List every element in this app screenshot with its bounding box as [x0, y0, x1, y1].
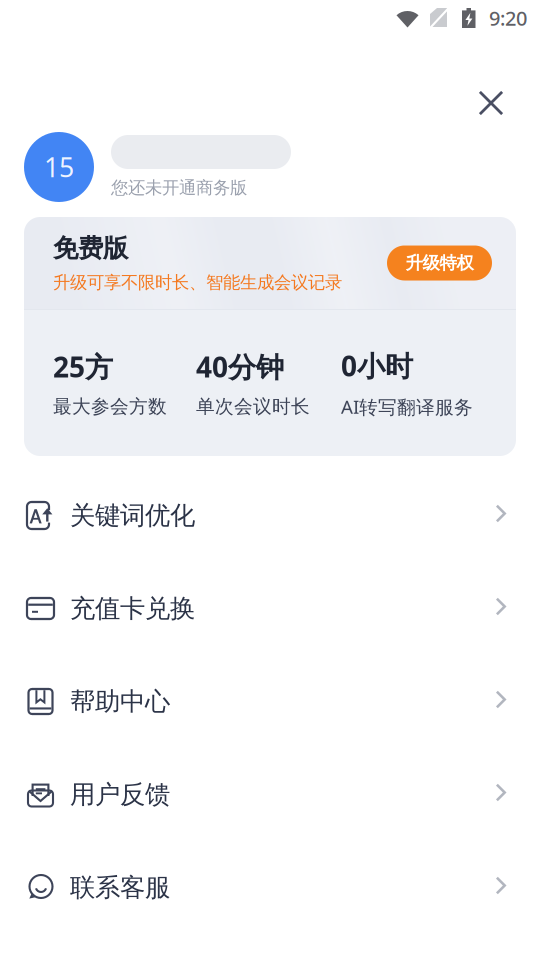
- staticText: 升级可享不限时长、智能生成会议记录: [53, 272, 342, 293]
- staticText: 升级特权: [405, 252, 473, 274]
- staticText: 免费版: [53, 233, 128, 264]
- button[interactable]: 联系客服: [0, 841, 540, 934]
- button[interactable]: 充值卡兑换: [0, 562, 540, 655]
- staticText: 单次会议时长: [196, 395, 310, 418]
- staticText: AI转写翻译服务: [341, 394, 473, 419]
- staticText: 充值卡兑换: [70, 593, 195, 624]
- button[interactable]: 用户反馈: [0, 748, 540, 841]
- staticText: 您还未开通商务版: [111, 177, 247, 198]
- staticText: 0小时: [341, 347, 413, 384]
- staticText: 25方: [53, 348, 113, 385]
- staticText: 9:20: [489, 5, 527, 31]
- staticText: 帮助中心: [70, 686, 170, 717]
- button[interactable]: 关键词优化: [0, 469, 540, 562]
- staticText: 40分钟: [196, 348, 284, 385]
- staticText: 联系客服: [70, 872, 170, 903]
- button[interactable]: 帮助中心: [0, 655, 540, 748]
- staticText: 用户反馈: [70, 779, 170, 810]
- staticText: 关键词优化: [70, 500, 195, 531]
- button[interactable]: 升级特权: [387, 245, 492, 280]
- button[interactable]: Close: [465, 77, 517, 129]
- staticText: 15: [44, 149, 74, 185]
- staticText: 最大参会方数: [53, 395, 167, 418]
